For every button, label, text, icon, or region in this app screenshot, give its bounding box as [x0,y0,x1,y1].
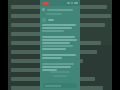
button[interactable] [40,24,80,71]
button[interactable]: Search [40,6,80,13]
button[interactable] [40,17,80,23]
button[interactable]: Message input [43,83,77,88]
